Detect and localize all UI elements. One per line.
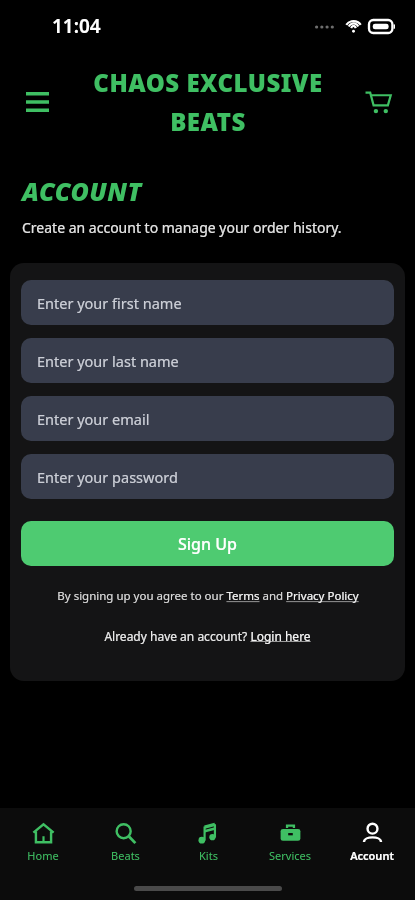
button[interactable]: Enter your last name	[21, 338, 394, 383]
staticText: CHAOS EXCLUSIVE	[93, 66, 323, 99]
button[interactable]: Services	[251, 817, 329, 868]
staticText: BEATS	[170, 105, 246, 138]
staticText: Home	[27, 848, 59, 863]
button[interactable]: Account	[333, 817, 411, 868]
staticText: Services	[269, 848, 311, 863]
staticText: Kits	[199, 848, 218, 863]
staticText: ACCOUNT	[22, 174, 142, 208]
button[interactable]: Kits	[169, 817, 247, 868]
staticText: By signing up you agree to our Terms and…	[57, 588, 359, 604]
button[interactable]: Enter your password	[21, 454, 394, 499]
button[interactable]: Cart	[355, 79, 401, 125]
button[interactable]: Beats	[86, 817, 164, 868]
staticText: Create an account to manage your order h…	[22, 218, 342, 237]
button[interactable]: Sign Up	[21, 521, 394, 566]
staticText: Enter your last name	[37, 351, 179, 371]
button[interactable]: Home	[4, 817, 82, 868]
staticText: Enter your password	[37, 467, 178, 487]
staticText: Beats	[111, 848, 140, 863]
staticText: Sign Up	[178, 533, 237, 555]
staticText: Account	[350, 848, 394, 863]
button[interactable]: Already have an account? Login here	[21, 628, 394, 644]
button[interactable]: Menu	[14, 79, 60, 125]
staticText: Already have an account? Login here	[104, 628, 311, 644]
button[interactable]: Enter your first name	[21, 280, 394, 325]
staticText: Enter your email	[37, 409, 150, 429]
button[interactable]: Enter your email	[21, 396, 394, 441]
staticText: 11:04	[52, 13, 101, 39]
staticText: Enter your first name	[37, 293, 182, 313]
